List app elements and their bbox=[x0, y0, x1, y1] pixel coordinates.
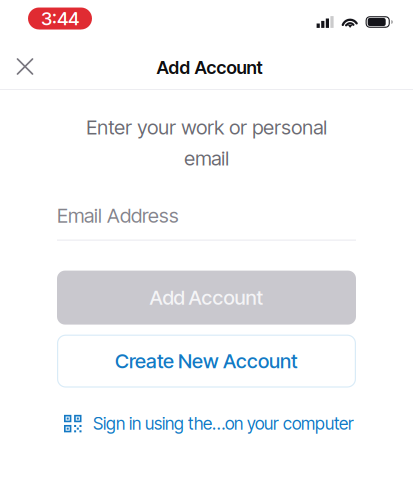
staticText: Enter your work or personal email bbox=[86, 115, 327, 170]
staticText: Add Account bbox=[149, 285, 263, 310]
staticText: Sign in using the…on your computer bbox=[93, 413, 354, 434]
staticText: Add Account bbox=[156, 57, 262, 78]
button[interactable]: Create New Account bbox=[57, 335, 356, 388]
button[interactable]: Add Account bbox=[57, 271, 356, 325]
staticText: Create New Account bbox=[115, 349, 298, 373]
staticText: Email Address bbox=[57, 203, 179, 228]
button[interactable]: Close bbox=[0, 42, 50, 86]
button[interactable]: Sign in using the…on your computer bbox=[57, 406, 356, 442]
staticText: 3:44 bbox=[41, 7, 79, 30]
